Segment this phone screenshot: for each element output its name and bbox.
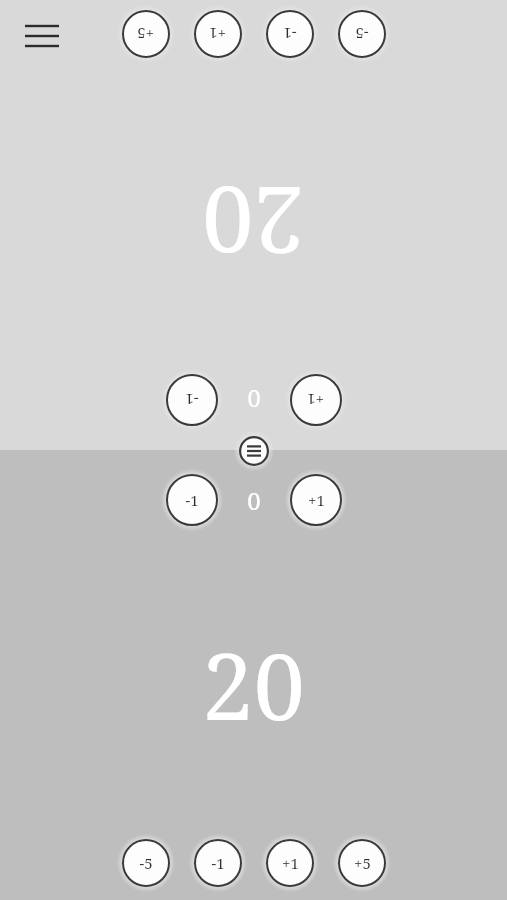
staticText: -1 xyxy=(185,390,199,410)
staticText: -1 xyxy=(185,490,199,510)
staticText: +5 xyxy=(137,24,154,44)
staticText: 0 xyxy=(247,383,261,416)
button[interactable]: -5 xyxy=(117,834,175,892)
staticText: +1 xyxy=(209,24,226,44)
staticText: -5 xyxy=(139,853,153,873)
staticText: 20 xyxy=(202,622,305,747)
staticText: +1 xyxy=(307,390,324,410)
button[interactable]: -5 xyxy=(333,5,391,63)
staticText: +5 xyxy=(354,853,371,873)
staticText: -5 xyxy=(355,24,369,44)
staticText: 0 xyxy=(247,484,261,517)
button[interactable]: +1 xyxy=(261,834,319,892)
staticText: -1 xyxy=(283,24,297,44)
staticText: 20 xyxy=(202,160,305,285)
button[interactable]: -1 xyxy=(161,469,223,531)
button[interactable]: Settings menu xyxy=(233,430,275,472)
button[interactable]: +1 xyxy=(285,469,347,531)
staticText: +1 xyxy=(308,490,325,510)
button[interactable]: -1 xyxy=(189,834,247,892)
button[interactable]: +1 xyxy=(189,5,247,63)
staticText: -1 xyxy=(211,853,225,873)
staticText: +1 xyxy=(282,853,299,873)
button[interactable]: -1 xyxy=(161,369,223,431)
button[interactable]: +1 xyxy=(285,369,347,431)
button[interactable]: +5 xyxy=(117,5,175,63)
button[interactable]: +5 xyxy=(333,834,391,892)
button[interactable]: Menu xyxy=(14,8,70,64)
button[interactable]: -1 xyxy=(261,5,319,63)
